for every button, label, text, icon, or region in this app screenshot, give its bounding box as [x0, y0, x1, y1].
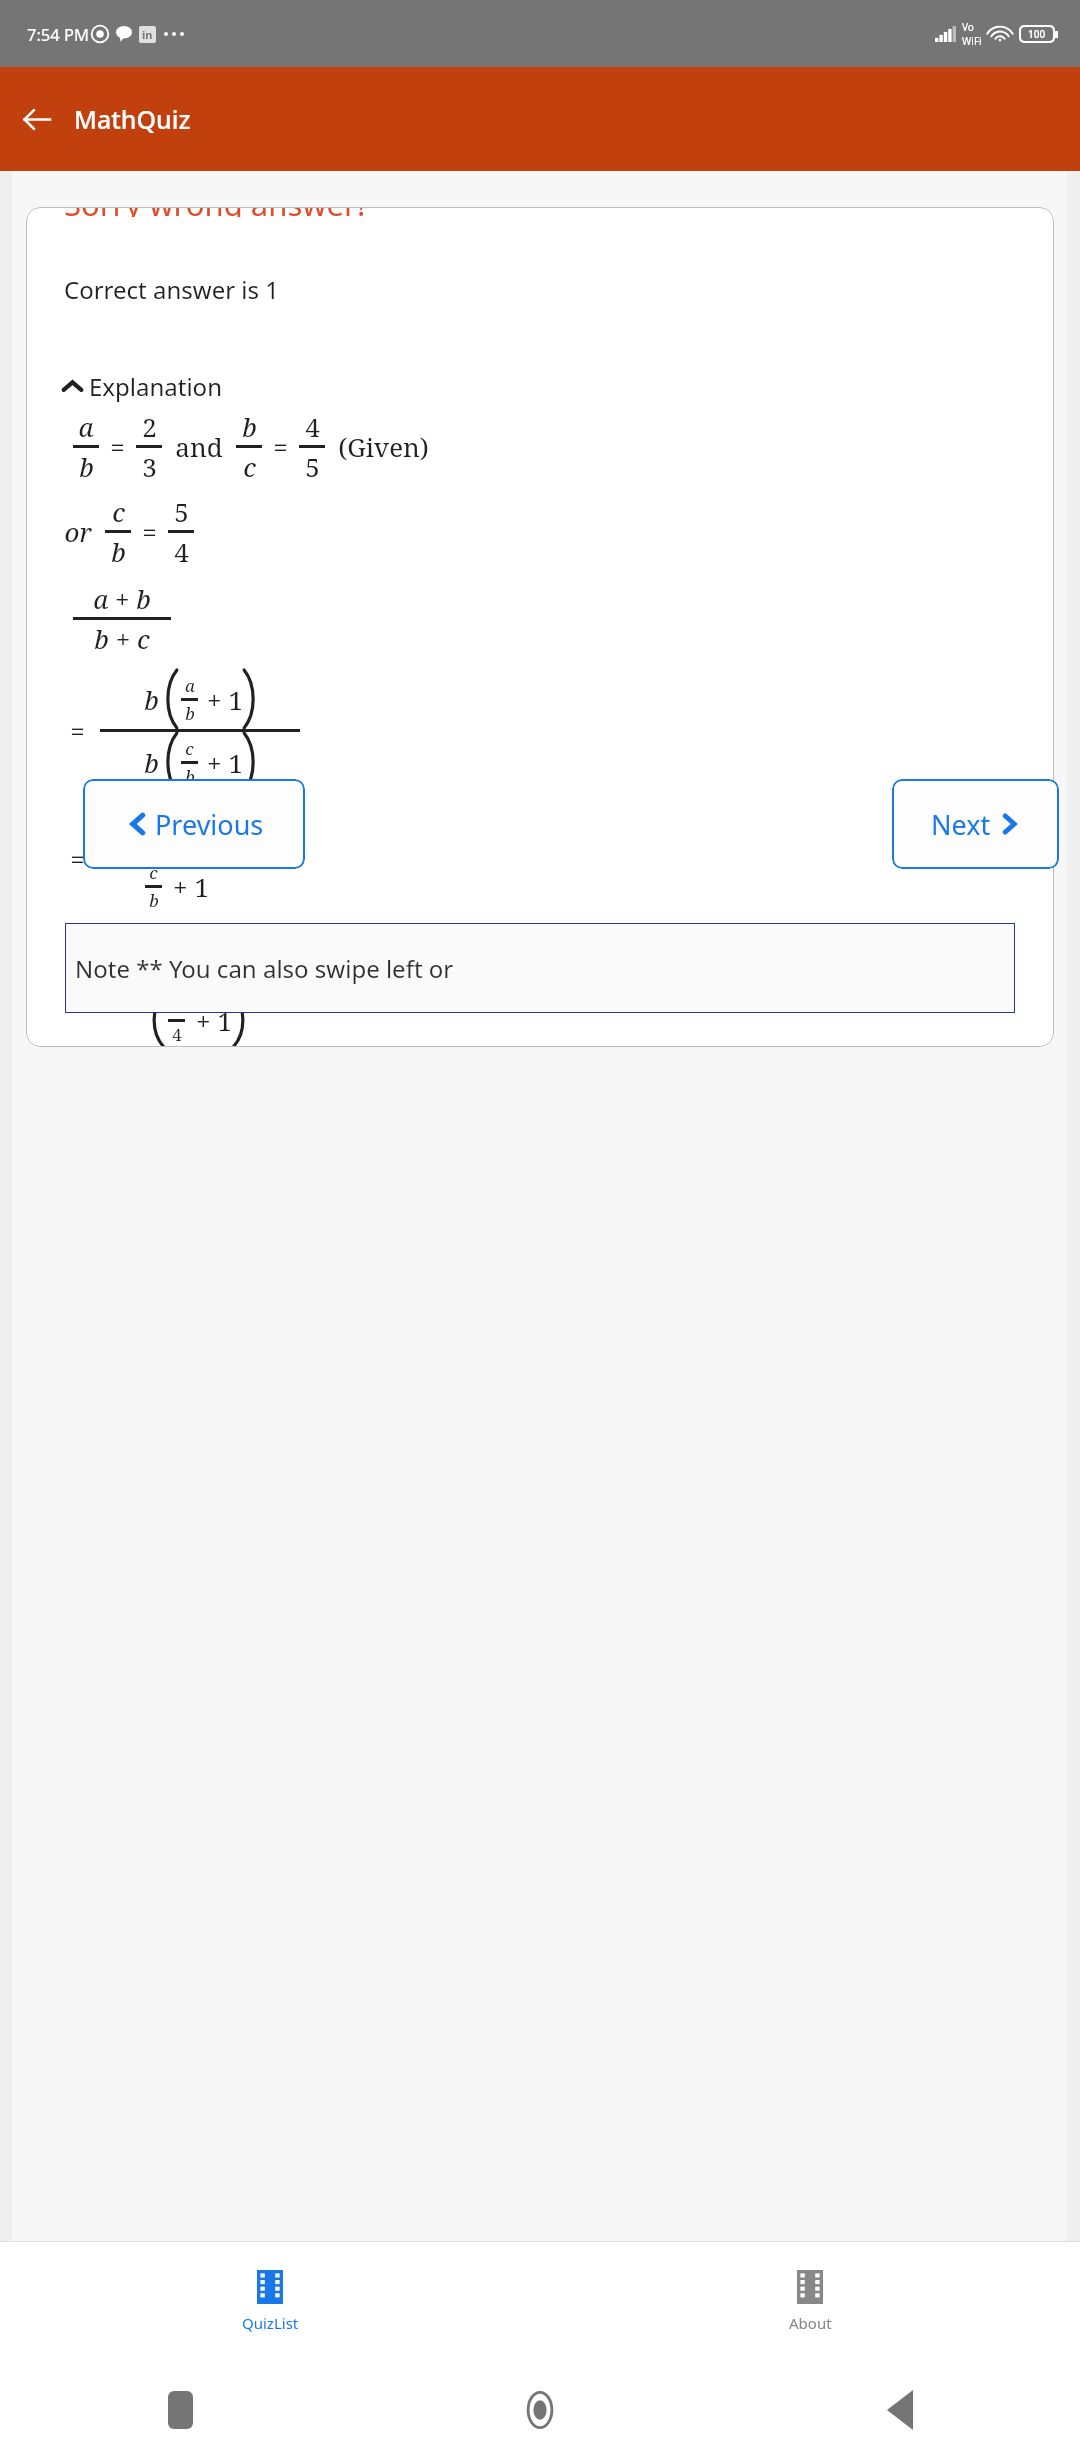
staticText: c — [185, 737, 194, 760]
staticText: a + b — [93, 581, 151, 616]
staticText: MathQuiz — [74, 102, 191, 136]
staticText: + 1 — [207, 745, 243, 780]
staticText: 3 — [142, 449, 157, 484]
button[interactable]: Recent apps — [168, 2391, 193, 2429]
button[interactable]: Previous — [83, 779, 305, 869]
staticText: a — [78, 409, 94, 444]
staticText: b — [185, 765, 195, 788]
staticText: + 1 — [173, 813, 209, 848]
staticText: Note ** You can also swipe left or — [75, 952, 454, 985]
staticText: a — [149, 805, 159, 828]
staticText: = — [142, 514, 157, 549]
staticText: 2 — [142, 409, 157, 444]
staticText: About — [789, 2313, 832, 2333]
staticText: b — [242, 409, 257, 444]
staticText: 4 — [174, 534, 189, 569]
staticText: 5 — [174, 494, 189, 529]
staticText: = — [70, 713, 85, 748]
staticText: b — [185, 702, 195, 725]
staticText: 100 — [1028, 27, 1046, 41]
staticText: = — [110, 429, 125, 464]
staticText: b — [79, 449, 94, 484]
staticText: 3 — [172, 960, 182, 983]
staticText: = — [70, 841, 85, 876]
staticText: (Given) — [338, 429, 429, 464]
button[interactable]: About — [540, 2242, 1080, 2359]
staticText: in — [142, 27, 153, 42]
staticText: or — [64, 514, 92, 549]
staticText: 5 — [172, 995, 182, 1018]
button[interactable]: Back — [878, 2388, 922, 2432]
button[interactable]: Next — [892, 779, 1059, 869]
staticText: 7:54 PM — [27, 23, 89, 45]
staticText: + 1 — [196, 940, 232, 975]
staticText: Previous — [155, 806, 264, 843]
button[interactable]: Explanation — [62, 370, 222, 403]
staticText: + 1 — [207, 682, 243, 717]
staticText: WiFi — [962, 34, 982, 48]
staticText: b + c — [94, 621, 150, 656]
staticText: Next — [931, 806, 991, 843]
button[interactable]: Home — [517, 2387, 563, 2433]
staticText: Sorry wrong answer! — [64, 207, 366, 217]
staticText: b — [149, 889, 159, 912]
staticText: Explanation — [89, 370, 222, 403]
staticText: 5 — [305, 449, 320, 484]
staticText: Correct answer is 1 — [64, 273, 279, 306]
staticText: 4 — [172, 1023, 182, 1046]
staticText: c — [243, 449, 256, 484]
staticText: b — [144, 745, 159, 780]
staticText: c — [112, 494, 125, 529]
button[interactable]: Back — [8, 91, 64, 147]
staticText: 4 — [305, 409, 320, 444]
staticText: b — [149, 833, 159, 856]
staticText: = — [273, 429, 288, 464]
staticText: a — [185, 674, 195, 697]
staticText: c — [149, 861, 158, 884]
staticText: QuizList — [242, 2313, 299, 2333]
staticText: b — [144, 682, 159, 717]
staticText: b — [111, 534, 126, 569]
button[interactable]: QuizList — [0, 2242, 540, 2359]
staticText: Vo — [962, 20, 974, 34]
staticText: and — [175, 429, 223, 464]
staticText: + 1 — [196, 1003, 232, 1038]
staticText: = — [70, 969, 85, 1004]
staticText: + 1 — [173, 869, 209, 904]
